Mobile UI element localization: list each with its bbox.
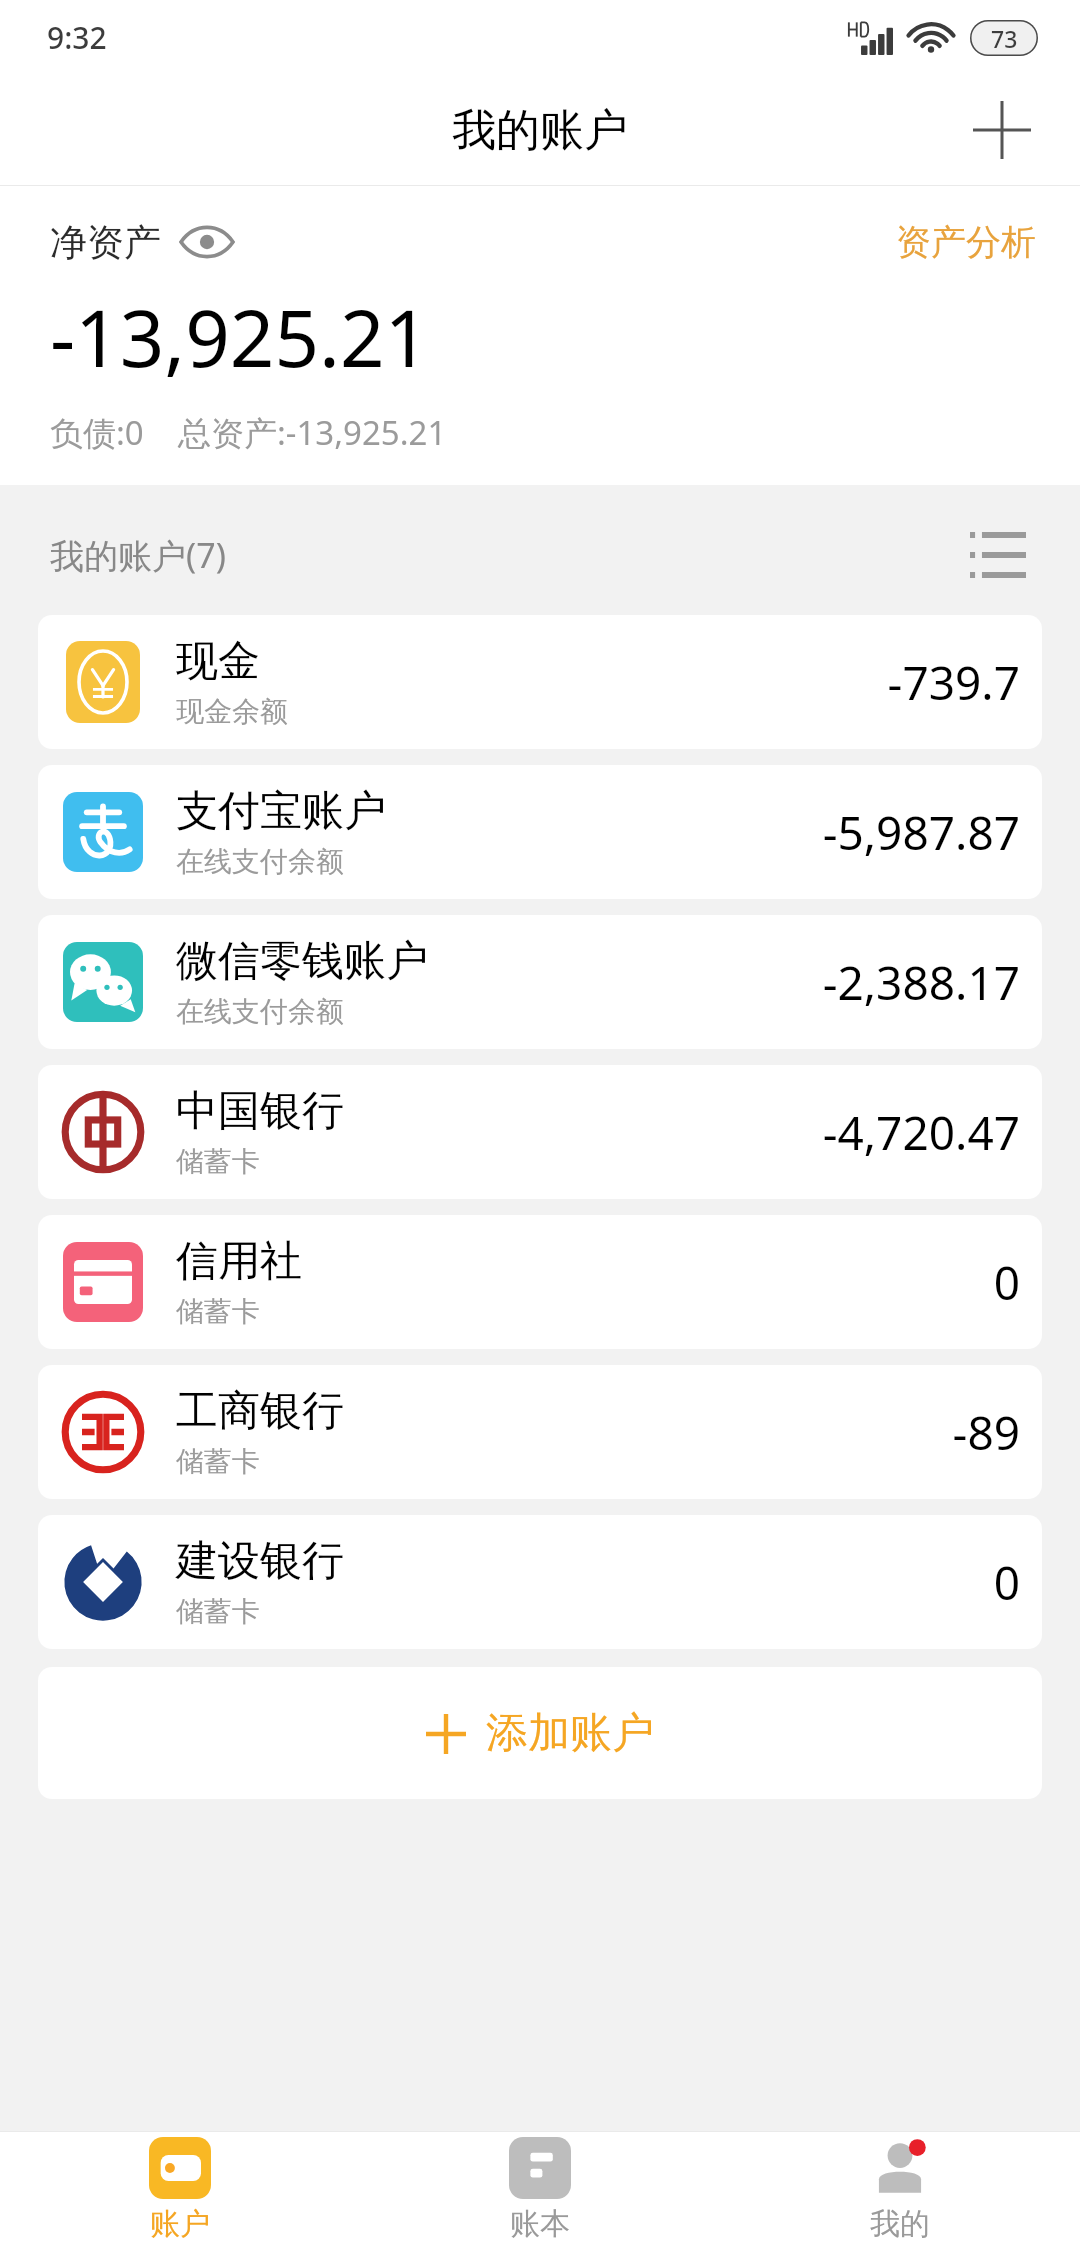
staticText: 信用社 [176, 1235, 302, 1288]
staticText: 负债:0 [50, 410, 144, 455]
staticText: 73 [991, 23, 1018, 54]
staticText: -5,987.87 [822, 801, 1020, 864]
staticText: 现金余额 [176, 694, 288, 729]
staticText: 我的账户(7) [50, 532, 226, 578]
staticText: 净资产 [50, 219, 161, 266]
staticText: 总资产:-13,925.21 [178, 410, 447, 455]
button[interactable]: 资产分析 [888, 214, 1044, 270]
staticText: 添加账户 [486, 1707, 654, 1760]
staticText: 储蓄卡 [176, 1294, 260, 1329]
staticText: 工商银行 [176, 1385, 344, 1438]
staticText: -89 [952, 1401, 1020, 1464]
staticText: 微信零钱账户 [176, 935, 428, 988]
button[interactable]: Toggle balance visibility [179, 214, 235, 270]
staticText: 我的 [870, 2205, 930, 2243]
staticText: 在线支付余额 [176, 994, 344, 1029]
button[interactable]: 账本 [360, 2132, 720, 2248]
staticText: 我的账户 [452, 103, 628, 158]
staticText: 储蓄卡 [176, 1594, 260, 1629]
button[interactable]: 建设银行 [38, 1515, 1042, 1649]
button[interactable]: 添加账户 [38, 1667, 1042, 1799]
button[interactable]: 支付宝账户 [38, 765, 1042, 899]
button[interactable]: 工商银行 [38, 1365, 1042, 1499]
button[interactable]: 信用社 [38, 1215, 1042, 1349]
staticText: 建设银行 [176, 1535, 344, 1588]
button[interactable]: 账户 [0, 2132, 360, 2248]
button[interactable]: 中国银行 [38, 1065, 1042, 1199]
button[interactable]: 微信零钱账户 [38, 915, 1042, 1049]
staticText: 账本 [510, 2205, 570, 2243]
staticText: 储蓄卡 [176, 1144, 260, 1179]
staticText: 0 [993, 1551, 1020, 1614]
staticText: 支付宝账户 [176, 785, 386, 838]
staticText: -13,925.21 [50, 284, 430, 390]
staticText: -2,388.17 [822, 951, 1020, 1014]
staticText: 在线支付余额 [176, 844, 344, 879]
staticText: 账户 [150, 2205, 210, 2243]
button[interactable]: Add account [954, 82, 1050, 178]
staticText: 资产分析 [896, 220, 1036, 264]
staticText: 现金 [176, 635, 260, 688]
staticText: 9:32 [47, 17, 107, 58]
button[interactable]: 我的 [720, 2132, 1080, 2248]
staticText: -739.7 [887, 651, 1020, 714]
button[interactable]: Sort accounts [960, 517, 1036, 593]
staticText: -4,720.47 [822, 1101, 1020, 1164]
staticText: 中国银行 [176, 1085, 344, 1138]
staticText: 储蓄卡 [176, 1444, 260, 1479]
staticText: 0 [993, 1251, 1020, 1314]
button[interactable]: 现金 [38, 615, 1042, 749]
